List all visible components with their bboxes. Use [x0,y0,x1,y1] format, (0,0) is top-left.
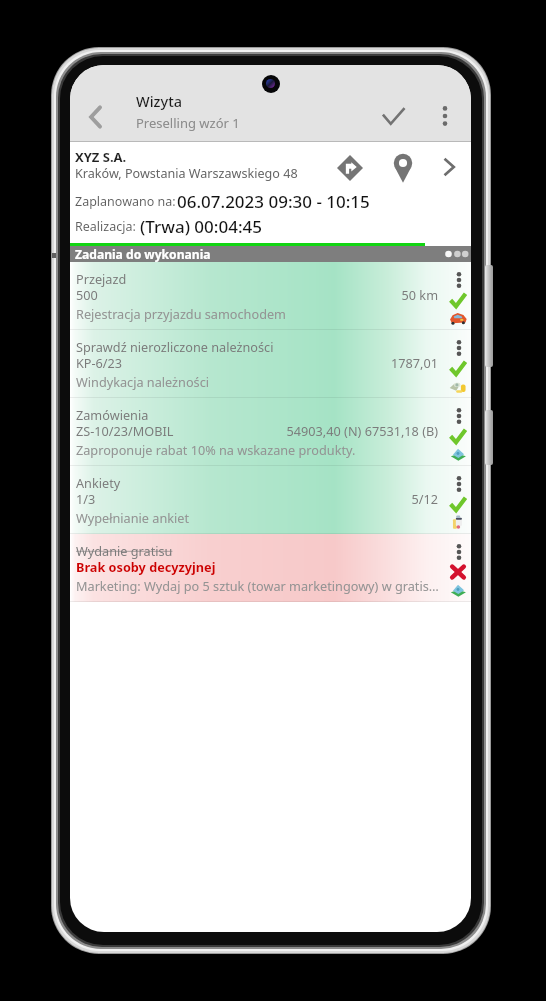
button[interactable]: Location [384,150,422,188]
button[interactable]: Options [447,334,471,362]
staticText: 1/3 [76,490,96,507]
button[interactable]: Navigate [331,149,369,187]
staticText: Ankiety [76,474,376,491]
button[interactable]: Options [447,402,471,430]
staticText: Brak osoby decyzyjnej [76,558,216,575]
button[interactable]: More options [426,96,464,136]
button[interactable]: Przejazd [70,262,471,330]
staticText: Preselling wzór 1 [136,114,240,132]
staticText: KP-6/23 [76,354,123,371]
staticText: Wizyta [136,91,182,111]
button[interactable]: Options [447,470,471,498]
staticText: Marketing: Wydaj po 5 sztuk (towar marke… [76,577,442,594]
staticText: Wypełnianie ankiet [76,509,442,526]
staticText: 5/12 [76,490,438,507]
staticText: ZS-10/23/MOBIL [76,422,174,439]
staticText: Rejestracja przyjazdu samochodem [76,305,442,322]
staticText: Kraków, Powstania Warszawskiego 48 [75,165,298,182]
staticText: Wydanie gratisu [76,542,376,559]
staticText: Zaplanowano na: [75,193,176,210]
button[interactable]: Ankiety [70,466,471,534]
button[interactable]: Wydanie gratisu [70,534,471,602]
button[interactable]: Options [447,266,471,294]
staticText: 54903,40 (N) 67531,18 (B) [76,422,438,439]
staticText: 50 km [76,286,438,303]
staticText: (Trwa) 00:04:45 [140,215,262,238]
staticText: Zadania do wykonania [75,246,211,262]
button[interactable]: Confirm [373,96,413,136]
button[interactable]: Details [430,148,468,186]
staticText: Sprawdź nierozliczone należności [76,338,376,355]
staticText: 500 [76,286,98,303]
button[interactable]: Zamówienia [70,398,471,466]
staticText: Zamówienia [76,406,376,423]
staticText: Zaproponuje rabat 10% na wskazane produk… [76,441,442,458]
button[interactable]: Options [447,538,471,566]
staticText: Windykacja należności [76,373,442,390]
staticText: XYZ S.A. [75,148,127,166]
staticText: 1787,01 [76,354,438,371]
staticText: 06.07.2023 09:30 - 10:15 [177,190,370,213]
button[interactable]: Sprawdź nierozliczone należności [70,330,471,398]
staticText: Przejazd [76,270,376,287]
staticText: Realizacja: [75,218,136,235]
button[interactable]: Back [76,98,114,136]
